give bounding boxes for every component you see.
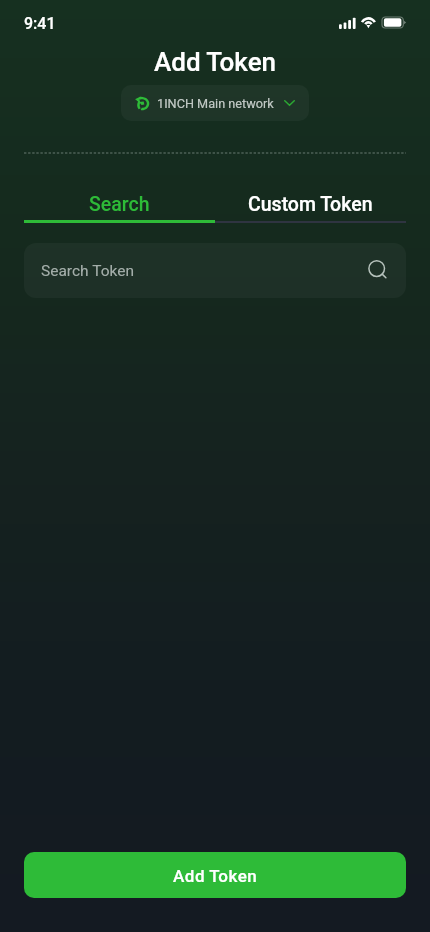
button[interactable]: Custom Token	[215, 190, 406, 218]
staticText: Search Token	[41, 262, 134, 280]
button[interactable]: Search	[24, 190, 215, 218]
button[interactable]: Add Token	[24, 852, 406, 898]
staticText: Add Token	[173, 866, 258, 886]
staticText: Add Token	[0, 47, 430, 77]
staticText: 9:41	[24, 14, 56, 33]
staticText: Search	[89, 193, 150, 216]
staticText: 1INCH Main network	[157, 96, 274, 111]
button[interactable]: 1INCH Main network	[121, 85, 309, 121]
other: Search	[368, 260, 390, 282]
button[interactable]: Search Token	[24, 243, 406, 298]
staticText: Custom Token	[248, 193, 373, 216]
